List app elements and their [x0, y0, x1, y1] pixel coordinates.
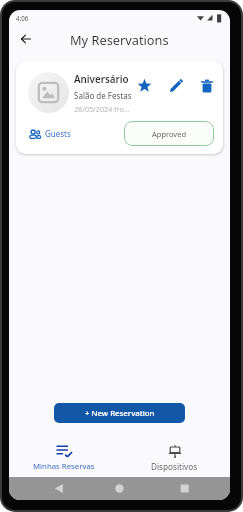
button[interactable]: Guests [29, 128, 71, 139]
staticText: My Reservations [70, 31, 169, 48]
staticText: Salão de Festas [74, 90, 132, 101]
staticText: Minhas Reservas [33, 461, 95, 472]
button[interactable] [200, 79, 214, 93]
staticText: Aniversário [74, 73, 129, 86]
staticText: + New Reservation [85, 408, 155, 419]
button[interactable]: + New Reservation [54, 403, 185, 423]
button[interactable]: Dispositivos [119, 432, 230, 477]
staticText: Approved [152, 129, 187, 139]
button[interactable] [137, 78, 152, 93]
staticText: 28/05/2024 fro... [74, 104, 130, 114]
button[interactable]: Aniversário [16, 61, 223, 154]
button[interactable] [15, 28, 37, 50]
staticText: Guests [45, 128, 71, 139]
button[interactable] [169, 78, 184, 93]
button[interactable] [9, 477, 230, 500]
staticText: 4:06 [16, 14, 29, 22]
button[interactable]: Minhas Reservas [9, 432, 119, 477]
button[interactable]: Approved [124, 121, 214, 146]
staticText: Dispositivos [151, 461, 198, 472]
